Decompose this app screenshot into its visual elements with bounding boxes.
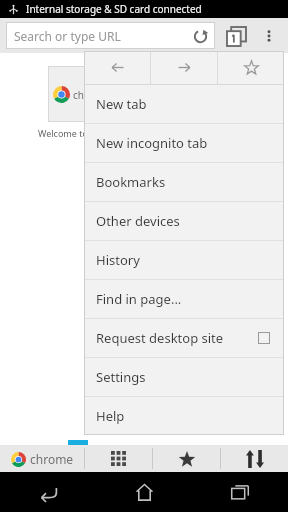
- button[interactable]: Find in page...: [84, 280, 284, 318]
- staticText: New incognito tab: [96, 134, 208, 152]
- button[interactable]: More options: [254, 21, 284, 51]
- button[interactable]: Settings: [84, 358, 284, 396]
- button[interactable]: Tabs: [220, 20, 252, 52]
- button[interactable]: Back: [0, 472, 96, 512]
- button[interactable]: Forward: [151, 51, 217, 84]
- staticText: New tab: [96, 95, 147, 113]
- button[interactable]: Back: [84, 51, 150, 84]
- button[interactable]: Bookmarks: [84, 163, 284, 201]
- button[interactable]: History: [84, 241, 284, 279]
- staticText: Settings: [96, 368, 146, 386]
- staticText: Find in page...: [96, 290, 182, 308]
- staticText: chrome: [30, 451, 74, 467]
- staticText: Bookmarks: [96, 173, 166, 191]
- button[interactable]: Request desktop site: [84, 319, 284, 357]
- button[interactable]: chrome: [48, 66, 114, 122]
- staticText: Welcome to Chrome: [38, 127, 124, 139]
- staticText: Help: [96, 407, 125, 425]
- button[interactable]: Help: [84, 397, 284, 435]
- button[interactable]: Bookmarks: [153, 445, 220, 472]
- button[interactable]: chrome: [0, 445, 84, 472]
- button[interactable]: Other devices: [84, 202, 284, 240]
- button[interactable]: Recent apps: [192, 472, 288, 512]
- button[interactable]: Apps: [85, 445, 152, 472]
- staticText: History: [96, 251, 140, 269]
- staticText: Request desktop site: [96, 329, 224, 347]
- button[interactable]: Home: [96, 472, 192, 512]
- button[interactable]: Transfers: [221, 445, 288, 472]
- button[interactable]: Bookmark this page: [218, 51, 284, 84]
- staticText: chrome: [73, 88, 109, 102]
- staticText: Internal storage & SD card connected: [26, 2, 202, 16]
- staticText: Other devices: [96, 212, 180, 230]
- button[interactable]: New incognito tab: [84, 124, 284, 162]
- button[interactable]: Reload: [187, 23, 213, 49]
- button[interactable]: Search or type URL: [6, 22, 215, 49]
- button[interactable]: New tab: [84, 85, 284, 123]
- staticText: Search or type URL: [14, 28, 121, 44]
